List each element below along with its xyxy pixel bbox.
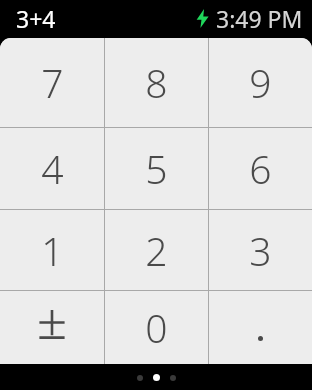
button[interactable]: 9 xyxy=(209,38,312,127)
staticText: 0 xyxy=(145,301,168,354)
button[interactable]: 4 xyxy=(0,128,104,209)
other: Charging xyxy=(196,9,209,28)
staticText: 1 xyxy=(41,224,64,277)
staticText: 5 xyxy=(145,142,168,195)
staticText: 3:49 PM xyxy=(216,3,303,34)
button[interactable]: 0 xyxy=(105,291,208,364)
staticText: 4 xyxy=(41,142,64,195)
staticText: 7 xyxy=(41,56,64,109)
button[interactable]: 2 xyxy=(105,210,208,290)
button[interactable]: Toggle sign xyxy=(0,291,104,364)
button[interactable] xyxy=(209,291,312,364)
button[interactable]: 5 xyxy=(105,128,208,209)
button[interactable]: 1 xyxy=(0,210,104,290)
staticText: 9 xyxy=(249,56,272,109)
button[interactable]: 7 xyxy=(0,38,104,127)
button[interactable]: 3 xyxy=(209,210,312,290)
other: Toggle sign xyxy=(37,312,67,344)
staticText: 8 xyxy=(145,56,168,109)
staticText: 3 xyxy=(249,224,272,277)
button[interactable]: 6 xyxy=(209,128,312,209)
button[interactable]: 8 xyxy=(105,38,208,127)
staticText: 3+4 xyxy=(16,3,56,34)
staticText: 6 xyxy=(249,142,272,195)
staticText: 2 xyxy=(145,224,168,277)
